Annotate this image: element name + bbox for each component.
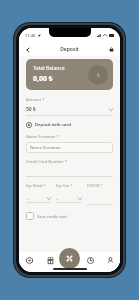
staticText: Total Balance bbox=[33, 65, 65, 72]
button[interactable]: Save credit card bbox=[26, 212, 67, 220]
button[interactable]: 50 ₺ bbox=[26, 104, 113, 116]
button[interactable]: Menu bbox=[59, 248, 80, 269]
staticText: 0,00 ₺ bbox=[33, 74, 53, 84]
staticText: CVV/CVC * bbox=[87, 184, 103, 188]
button[interactable] bbox=[87, 195, 113, 205]
staticText: Exp. Year * bbox=[56, 184, 73, 188]
button[interactable]: Total Balance bbox=[26, 59, 113, 90]
button[interactable]: Gifts bbox=[40, 252, 60, 268]
staticText: Amount * bbox=[26, 97, 45, 102]
button[interactable]: History bbox=[80, 252, 100, 268]
button[interactable]: -- bbox=[26, 195, 51, 203]
button[interactable]: Secure bbox=[106, 44, 117, 55]
staticText: 11:40 bbox=[25, 33, 36, 38]
staticText: Name Surname * bbox=[26, 134, 59, 139]
button[interactable]: Back bbox=[22, 44, 33, 55]
staticText: Name Surname bbox=[30, 145, 61, 151]
staticText: -- bbox=[56, 196, 59, 201]
staticText: Save credit card bbox=[37, 214, 67, 219]
staticText: ₺ bbox=[97, 72, 100, 79]
button[interactable]: Name Surname bbox=[26, 142, 113, 153]
staticText: -- bbox=[26, 196, 29, 201]
staticText: Deposit with card bbox=[35, 122, 71, 128]
button[interactable] bbox=[26, 167, 113, 177]
button[interactable]: Deposit with card bbox=[26, 122, 113, 128]
staticText: Credit Card Number * bbox=[26, 159, 68, 164]
staticText: Deposit bbox=[60, 46, 79, 53]
button[interactable]: -- bbox=[56, 195, 82, 203]
button[interactable]: Games bbox=[19, 252, 40, 268]
staticText: Exp. Month * bbox=[26, 184, 46, 188]
button[interactable]: Profile bbox=[100, 252, 120, 268]
staticText: 50 ₺ bbox=[26, 106, 36, 113]
